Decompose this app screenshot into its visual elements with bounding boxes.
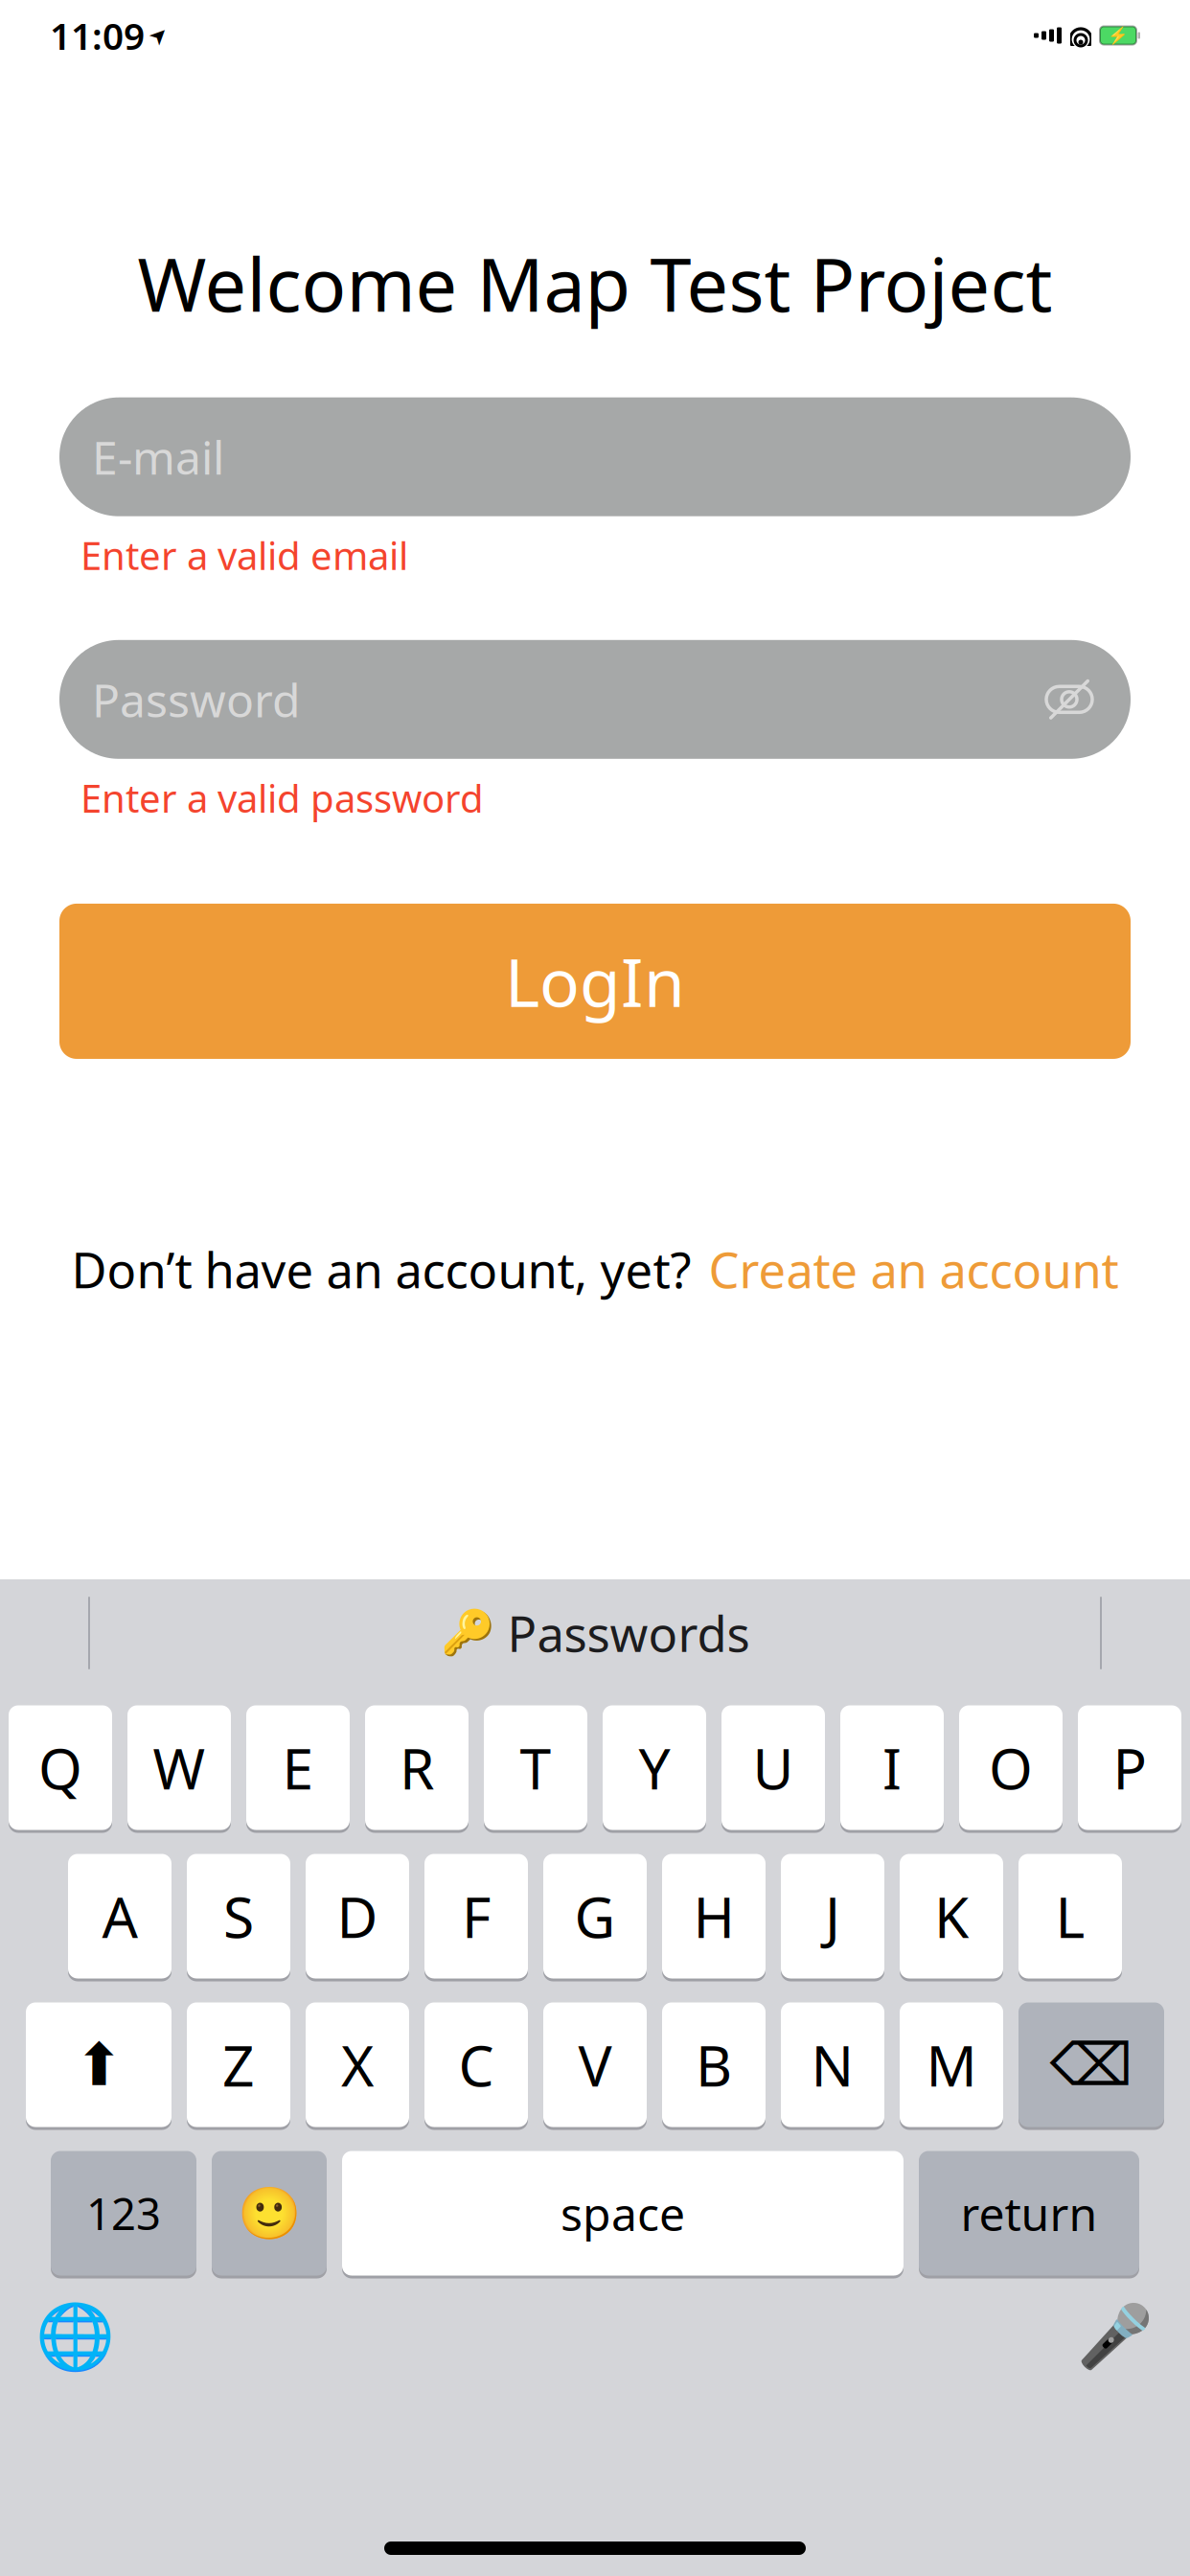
staticText: Y xyxy=(639,1730,670,1805)
staticText: 11:09 xyxy=(50,11,145,60)
button[interactable]: O xyxy=(959,1704,1063,1831)
staticText: Enter a valid password xyxy=(80,772,484,823)
button[interactable]: K xyxy=(900,1852,1003,1980)
button[interactable]: D xyxy=(306,1852,409,1980)
button[interactable]: LogIn xyxy=(59,904,1131,1059)
staticText: ⚡ xyxy=(1108,26,1129,45)
staticText: Q xyxy=(38,1730,82,1805)
staticText: Passwords xyxy=(507,1601,750,1665)
button[interactable]: 123 xyxy=(51,2150,196,2277)
staticText: T xyxy=(520,1730,551,1805)
button[interactable]: N xyxy=(781,2001,884,2128)
button[interactable]: F xyxy=(424,1852,528,1980)
button[interactable]: P xyxy=(1078,1704,1181,1831)
staticText: E-mail xyxy=(92,426,224,487)
button[interactable]: Emoji xyxy=(212,2150,327,2277)
button[interactable]: Z xyxy=(187,2001,290,2128)
staticText: C xyxy=(458,2027,494,2102)
button[interactable]: E xyxy=(246,1704,350,1831)
button[interactable]: M xyxy=(900,2001,1003,2128)
button[interactable]: L xyxy=(1018,1852,1122,1980)
staticText: E xyxy=(282,1730,314,1805)
staticText: M xyxy=(926,2027,977,2102)
button[interactable]: B xyxy=(662,2001,766,2128)
button[interactable]: space xyxy=(342,2150,904,2277)
staticText: K xyxy=(934,1879,969,1953)
staticText: B xyxy=(696,2027,732,2102)
button[interactable]: X xyxy=(306,2001,409,2128)
staticText: W xyxy=(153,1730,206,1805)
button[interactable]: R xyxy=(365,1704,469,1831)
button[interactable]: V xyxy=(543,2001,647,2128)
staticText: Z xyxy=(222,2027,255,2102)
staticText: 123 xyxy=(86,2184,161,2242)
staticText: H xyxy=(693,1879,734,1953)
button[interactable]: Delete xyxy=(1018,2001,1164,2128)
button[interactable]: Y xyxy=(603,1704,706,1831)
staticText: O xyxy=(989,1730,1033,1805)
staticText: Enter a valid email xyxy=(80,530,408,581)
staticText: X xyxy=(341,2027,374,2102)
staticText: Create an account xyxy=(709,1237,1119,1302)
button[interactable]: G xyxy=(543,1852,647,1980)
staticText: F xyxy=(462,1879,491,1953)
button[interactable]: Q xyxy=(9,1704,112,1831)
button[interactable]: Dictation xyxy=(1069,2290,1161,2382)
button[interactable]: W xyxy=(127,1704,231,1831)
staticText: return xyxy=(961,2183,1098,2244)
staticText: space xyxy=(561,2183,685,2244)
staticText: J xyxy=(825,1879,840,1953)
staticText: Welcome Map Test Project xyxy=(137,234,1053,332)
staticText: L xyxy=(1055,1879,1085,1953)
staticText: ⌫ xyxy=(1050,2031,1133,2098)
button[interactable]: J xyxy=(781,1852,884,1980)
button[interactable]: A xyxy=(68,1852,172,1980)
staticText: Password xyxy=(92,669,301,730)
staticText: 🌐 xyxy=(35,2300,114,2373)
button[interactable]: C xyxy=(424,2001,528,2128)
button[interactable]: T xyxy=(484,1704,587,1831)
button[interactable]: I xyxy=(840,1704,944,1831)
button[interactable]: Create an account xyxy=(709,1237,1119,1302)
staticText: U xyxy=(753,1730,794,1805)
staticText: R xyxy=(400,1730,434,1805)
button[interactable]: 🔑 xyxy=(423,1591,767,1675)
button[interactable]: S xyxy=(187,1852,290,1980)
button[interactable]: return xyxy=(919,2150,1139,2277)
staticText: S xyxy=(223,1879,254,1953)
staticText: P xyxy=(1113,1730,1146,1805)
staticText: ⬆ xyxy=(74,2031,123,2098)
button[interactable]: Shift xyxy=(26,2001,172,2128)
staticText: D xyxy=(337,1879,378,1953)
staticText: 🎤 xyxy=(1077,2301,1154,2371)
button[interactable]: U xyxy=(721,1704,825,1831)
staticText: ➤ xyxy=(149,23,168,48)
staticText: I xyxy=(882,1730,902,1805)
button[interactable]: Password xyxy=(59,640,1131,759)
staticText: N xyxy=(811,2027,854,2102)
staticText: LogIn xyxy=(505,937,685,1025)
staticText: 🔑 xyxy=(440,1608,494,1658)
button[interactable]: E-mail xyxy=(59,397,1131,516)
staticText: Don’t have an account, yet? xyxy=(71,1237,691,1302)
button[interactable]: H xyxy=(662,1852,766,1980)
staticText: 🙂 xyxy=(238,2184,301,2242)
staticText: V xyxy=(578,2027,612,2102)
staticText: G xyxy=(574,1879,616,1953)
staticText: A xyxy=(102,1879,137,1953)
button[interactable]: Next keyboard xyxy=(29,2290,121,2382)
